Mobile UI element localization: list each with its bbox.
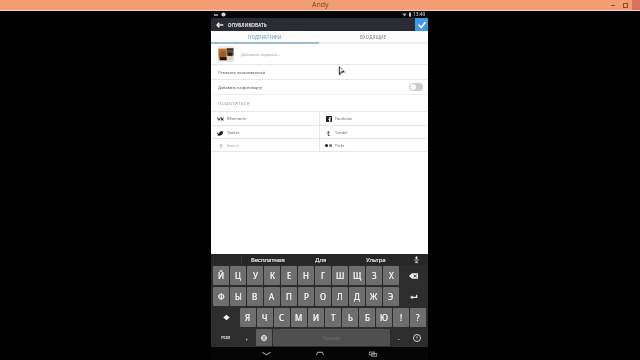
button[interactable]: , (239, 329, 255, 346)
staticText: ПОДЕЛИТЬСЯ (218, 100, 250, 106)
staticText: Facebook (335, 116, 353, 121)
button[interactable]: Back (211, 18, 228, 31)
staticText: Н (303, 270, 309, 281)
button[interactable]: Ультра (348, 254, 404, 265)
button[interactable]: Для (293, 254, 348, 265)
staticText: ?123 (221, 335, 231, 341)
button[interactable]: Ю (376, 308, 392, 327)
button[interactable]: Recents (346, 347, 399, 360)
button[interactable]: В (247, 287, 263, 306)
button[interactable]: Ж (366, 287, 382, 306)
staticText: Tumblr (335, 130, 348, 135)
button[interactable]: Ц (230, 266, 246, 285)
button[interactable]: А (264, 287, 280, 306)
staticText: К (270, 270, 275, 281)
button[interactable]: О (315, 287, 331, 306)
staticText: Й (218, 270, 225, 281)
button[interactable]: Done (415, 18, 428, 31)
staticText: ? (416, 312, 420, 323)
button[interactable]: Г (315, 266, 331, 285)
button[interactable]: Language (256, 329, 272, 346)
staticText: Ж (370, 291, 378, 302)
staticText: И (313, 312, 320, 323)
staticText: Русский (323, 335, 340, 341)
button[interactable]: ВХОДЯЩИЕ (319, 31, 428, 42)
button[interactable]: Б (359, 308, 375, 327)
button[interactable]: Enter (400, 287, 426, 306)
button[interactable]: ПОДПИСЧИКИ (211, 31, 319, 42)
button[interactable]: . (391, 329, 406, 346)
button[interactable]: П (281, 287, 297, 306)
button[interactable]: Е (281, 266, 297, 285)
staticText: Для (315, 256, 327, 264)
staticText: Andy (312, 0, 329, 10)
button[interactable]: Й (213, 266, 229, 285)
button[interactable]: Т (325, 308, 341, 327)
button[interactable]: Backspace (400, 266, 426, 285)
staticText: С (279, 312, 285, 323)
button[interactable]: Х (383, 266, 399, 285)
button[interactable]: С (274, 308, 290, 327)
staticText: Добавить подпись... (241, 52, 281, 57)
staticText: М (295, 312, 303, 323)
button[interactable]: Twitter (211, 126, 319, 138)
button[interactable]: Swarm (211, 139, 319, 151)
staticText: Я (245, 312, 251, 323)
button[interactable]: Д (349, 287, 365, 306)
button[interactable]: М (291, 308, 307, 327)
button[interactable]: Отметить пользователей (211, 65, 428, 79)
staticText: Д (354, 291, 360, 302)
staticText: Ч (262, 312, 268, 323)
button[interactable]: Voice input (407, 329, 426, 346)
button[interactable]: Minimize (606, 0, 619, 10)
button[interactable]: ВКонтакте (211, 112, 319, 125)
staticText: Ю (380, 312, 388, 323)
button[interactable]: Ш (332, 266, 348, 285)
staticText: ВХОДЯЩИЕ (360, 34, 387, 40)
staticText: А (269, 291, 275, 302)
button[interactable]: Ь (342, 308, 358, 327)
button[interactable]: Voice input (404, 254, 428, 265)
button[interactable]: Р (298, 287, 314, 306)
staticText: Р (304, 291, 309, 302)
staticText: Т (331, 312, 336, 323)
button[interactable]: З (366, 266, 382, 285)
button[interactable]: У (247, 266, 263, 285)
staticText: Ы (235, 291, 242, 302)
staticText: ОПУБЛИКОВАТЬ (228, 22, 267, 28)
staticText: З (372, 270, 377, 281)
button[interactable]: Flickr (320, 139, 428, 151)
button[interactable]: Maximize (619, 0, 632, 10)
button[interactable]: К (264, 266, 280, 285)
button[interactable]: Добавить на фотокарту (211, 80, 428, 94)
button[interactable]: Н (298, 266, 314, 285)
staticText: ВКонтакте (227, 116, 247, 121)
button[interactable]: Shift (213, 308, 239, 327)
button[interactable]: Я (240, 308, 256, 327)
button[interactable]: ! (393, 308, 409, 327)
button[interactable]: И (308, 308, 324, 327)
button[interactable]: Щ (349, 266, 365, 285)
staticText: Ь (348, 312, 353, 323)
button[interactable]: ? (410, 308, 426, 327)
button[interactable]: Home (293, 347, 346, 360)
button[interactable]: Ы (230, 287, 246, 306)
button[interactable]: Facebook (320, 112, 428, 125)
button[interactable]: Бесплатная (242, 254, 293, 265)
button[interactable]: t (320, 126, 428, 138)
button[interactable]: Symbols (213, 329, 238, 346)
button[interactable]: Ф (213, 287, 229, 306)
staticText: Б (365, 312, 370, 323)
button[interactable]: Ч (257, 308, 273, 327)
button[interactable]: Л (332, 287, 348, 306)
staticText: Г (321, 270, 326, 281)
staticText: Е (287, 270, 292, 281)
button[interactable]: Back (240, 347, 293, 360)
staticText: Ф (218, 291, 225, 302)
button[interactable]: Добавить подпись... (211, 44, 428, 64)
staticText: t (327, 129, 331, 136)
button[interactable]: Э (383, 287, 399, 306)
